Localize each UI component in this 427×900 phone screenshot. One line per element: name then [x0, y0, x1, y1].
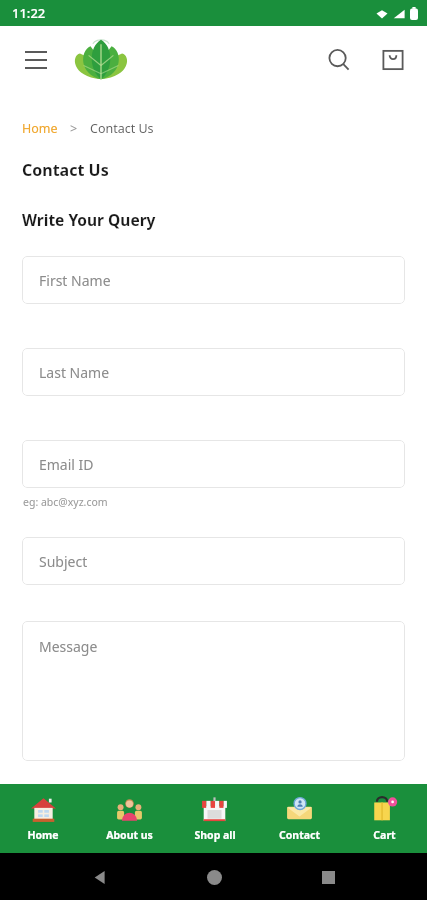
staticText: >	[70, 120, 78, 137]
button[interactable]: Home	[22, 120, 58, 137]
button[interactable]: Last Name	[22, 348, 405, 396]
staticText: Contact	[279, 828, 320, 842]
button[interactable]: Subject	[22, 537, 405, 585]
button[interactable]: Logo	[70, 37, 132, 83]
staticText: Subject	[39, 552, 88, 571]
staticText: Message	[39, 637, 98, 656]
button[interactable]: First Name	[22, 256, 405, 304]
button[interactable]: Search	[319, 40, 359, 80]
button[interactable]: About us	[86, 784, 172, 853]
button[interactable]: Contact	[257, 784, 342, 853]
button[interactable]: Home	[198, 861, 230, 893]
staticText: First Name	[39, 271, 111, 290]
staticText: Contact Us	[90, 120, 154, 137]
staticText: Cart	[373, 828, 396, 842]
button[interactable]: Recents	[312, 861, 344, 893]
staticText: 11:22	[12, 4, 46, 22]
button[interactable]: Cart	[373, 40, 413, 80]
button[interactable]: Home	[0, 784, 86, 853]
button[interactable]: Back	[83, 861, 115, 893]
button[interactable]: Email ID	[22, 440, 405, 488]
staticText: Email ID	[39, 455, 94, 474]
staticText: Contact Us	[22, 159, 109, 181]
staticText: Last Name	[39, 363, 110, 382]
button[interactable]: Message	[22, 621, 405, 761]
button[interactable]: Menu	[14, 38, 58, 82]
staticText: Home	[27, 828, 59, 842]
staticText: Write Your Query	[22, 209, 156, 230]
staticText: About us	[106, 828, 153, 842]
staticText: Shop all	[194, 828, 236, 842]
button[interactable]: Shop all	[172, 784, 257, 853]
staticText: Home	[22, 120, 58, 137]
staticText: eg: abc@xyz.com	[23, 495, 108, 509]
button[interactable]: Cart	[342, 784, 427, 853]
